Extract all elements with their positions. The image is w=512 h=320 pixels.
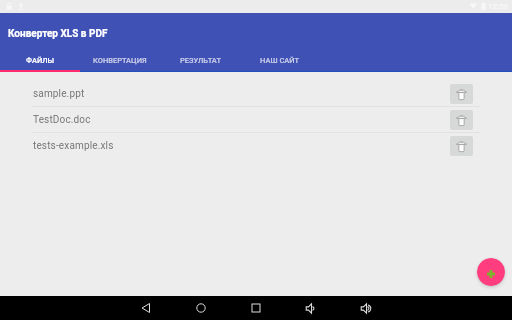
staticText: tests-example.xls (33, 140, 114, 152)
button[interactable]: РЕЗУЛЬТАТ (160, 48, 240, 72)
staticText: Конвертер XLS в PDF (8, 28, 108, 40)
button[interactable]: Delete sample.ppt (450, 84, 473, 104)
staticText: 12:52 (488, 2, 508, 11)
button[interactable]: КОНВЕРТАЦИЯ (80, 48, 160, 72)
button[interactable]: Delete tests-example.xls (450, 136, 473, 156)
staticText: НАШ САЙТ (260, 56, 300, 65)
staticText: TestDoc.doc (33, 114, 91, 126)
button[interactable]: tests-example.xls (0, 133, 512, 159)
button[interactable]: ФАЙЛЫ (0, 48, 80, 72)
staticText: РЕЗУЛЬТАТ (180, 56, 221, 65)
button[interactable]: Recent apps (244, 296, 268, 320)
button[interactable]: Volume down (299, 296, 323, 320)
button[interactable]: НАШ САЙТ (240, 48, 320, 72)
button[interactable]: sample.ppt (0, 81, 512, 107)
button[interactable]: Delete TestDoc.doc (450, 110, 473, 130)
button[interactable]: TestDoc.doc (0, 107, 512, 133)
staticText: КОНВЕРТАЦИЯ (93, 56, 147, 65)
button[interactable]: Add file (477, 258, 505, 286)
button[interactable]: Home (189, 296, 213, 320)
button[interactable]: Volume up (354, 296, 378, 320)
staticText: ФАЙЛЫ (26, 56, 55, 65)
staticText: sample.ppt (33, 88, 85, 100)
button[interactable]: Back (134, 296, 158, 320)
